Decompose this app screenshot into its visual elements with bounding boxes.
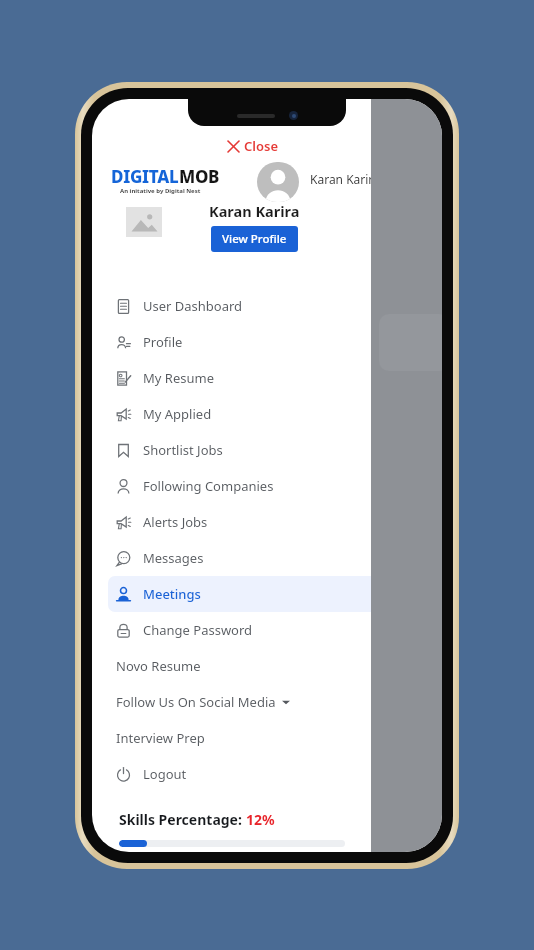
button[interactable]: Logout	[108, 756, 426, 792]
staticText: Skills Percentage:	[119, 810, 246, 829]
staticText: Alerts Jobs	[143, 513, 208, 531]
staticText: Change Password	[143, 621, 253, 639]
button[interactable]: Following Companies	[108, 468, 426, 504]
button[interactable]: Messages	[108, 540, 426, 576]
button[interactable]: Novo Resume	[108, 648, 426, 684]
staticText: Novo Resume	[116, 657, 201, 675]
button[interactable]: User Dashboard	[108, 288, 426, 324]
button[interactable]: Karan Karira	[310, 171, 397, 187]
staticText: Messages	[143, 549, 204, 567]
staticText: 12%	[246, 810, 275, 829]
staticText: View Profile	[222, 231, 287, 247]
button[interactable]: Follow Us On Social Media	[108, 684, 426, 720]
staticText: Follow Us On Social Media	[116, 693, 276, 711]
staticText: Karan Karira	[209, 201, 300, 221]
staticText: Meetings	[143, 585, 201, 603]
staticText: Close	[244, 137, 279, 155]
button[interactable]: My Applied	[108, 396, 426, 432]
staticText: An initative by Digital Nest	[120, 187, 201, 195]
staticText: Following Companies	[143, 477, 274, 495]
staticText: My Resume	[143, 369, 214, 387]
button[interactable]: Meetings	[108, 576, 426, 612]
button[interactable]: My Resume	[108, 360, 426, 396]
staticText: Logout	[143, 765, 187, 783]
staticText: Shortlist Jobs	[143, 441, 223, 459]
staticText: Karan Karira	[310, 171, 380, 187]
staticText: MOB	[179, 165, 220, 188]
staticText: User Dashboard	[143, 297, 243, 315]
button[interactable]: Change Password	[108, 612, 426, 648]
button[interactable]: Alerts Jobs	[108, 504, 426, 540]
button[interactable]: Profile avatar	[257, 162, 299, 202]
staticText: Profile	[143, 333, 183, 351]
staticText: DIGITAL	[111, 165, 179, 188]
staticText: Interview Prep	[116, 729, 205, 747]
button[interactable]: Close	[224, 135, 283, 157]
staticText: My Applied	[143, 405, 212, 423]
button[interactable]: Shortlist Jobs	[108, 432, 426, 468]
button[interactable]: View Profile	[211, 226, 298, 252]
button[interactable]: Profile	[108, 324, 426, 360]
button[interactable]: Interview Prep	[108, 720, 426, 756]
